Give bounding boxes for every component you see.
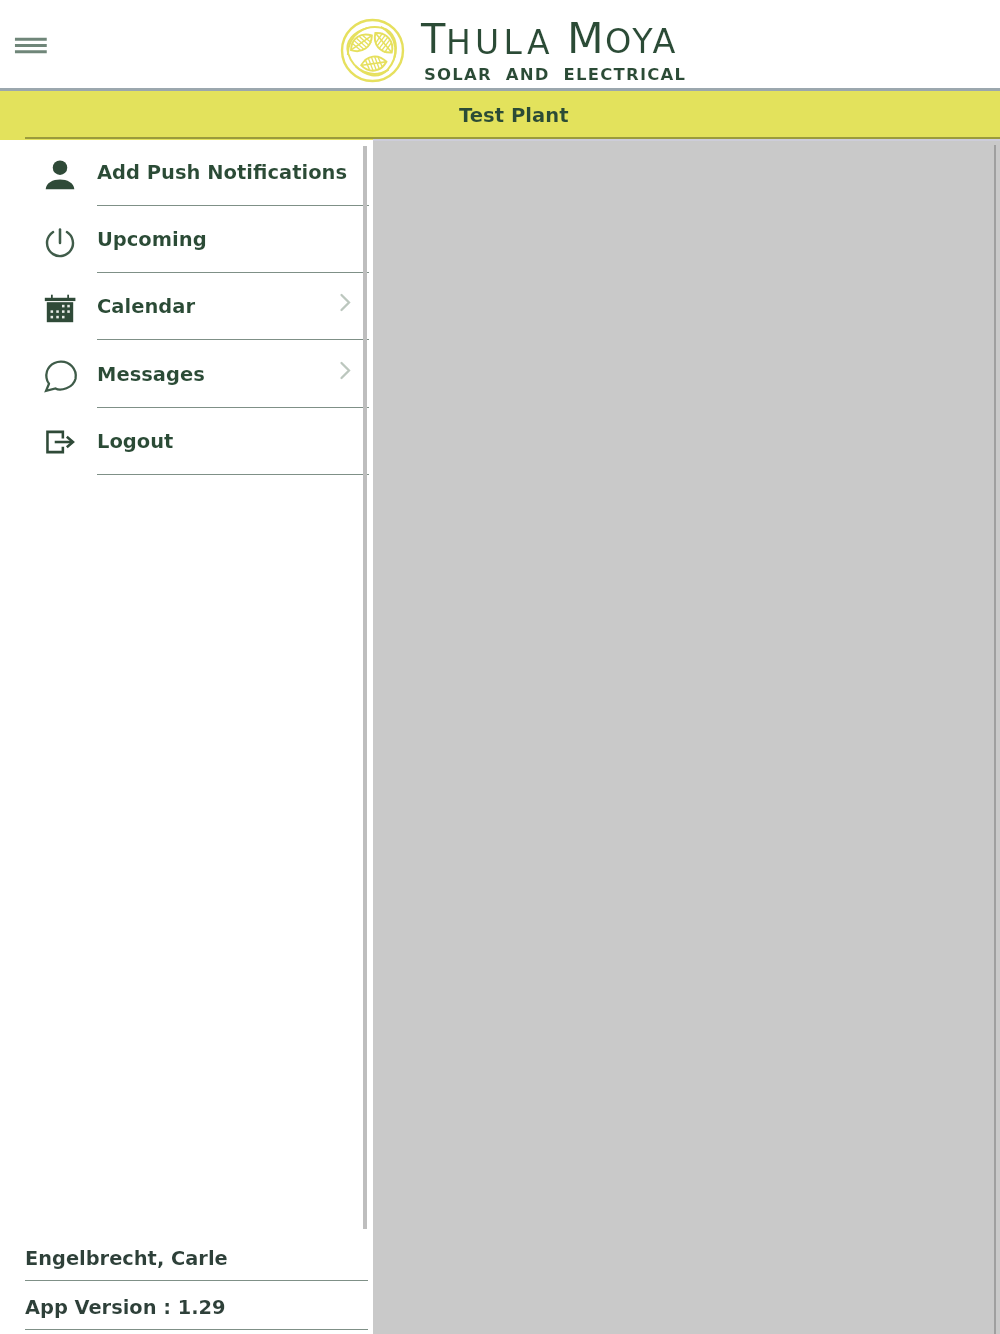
button[interactable]: Messages [0, 341, 373, 408]
staticText: Engelbrecht, Carle [25, 1247, 228, 1270]
button[interactable]: Calendar [0, 273, 373, 340]
button[interactable]: Logout [0, 408, 373, 475]
staticText: Logout [97, 430, 174, 453]
button[interactable]: Upcoming [0, 206, 373, 273]
staticText: SOLAR AND ELECTRICAL [424, 65, 687, 84]
staticText: Add Push Notifications [97, 161, 348, 184]
staticText: M [567, 14, 604, 63]
staticText: App Version : 1.29 [25, 1296, 226, 1319]
button[interactable]: Add Push Notifications [0, 139, 373, 206]
staticText: Messages [97, 363, 205, 386]
staticText: Calendar [97, 295, 195, 318]
staticText: Upcoming [97, 228, 207, 251]
button[interactable]: Open navigation menu [1, 16, 59, 74]
staticText: OYA [605, 22, 679, 61]
staticText: Test Plant [459, 104, 569, 127]
staticText: T [421, 16, 446, 63]
button[interactable]: Engelbrecht, Carle [0, 1232, 373, 1281]
staticText: HULA [446, 23, 554, 61]
button[interactable]: App Version : 1.29 [0, 1281, 373, 1330]
